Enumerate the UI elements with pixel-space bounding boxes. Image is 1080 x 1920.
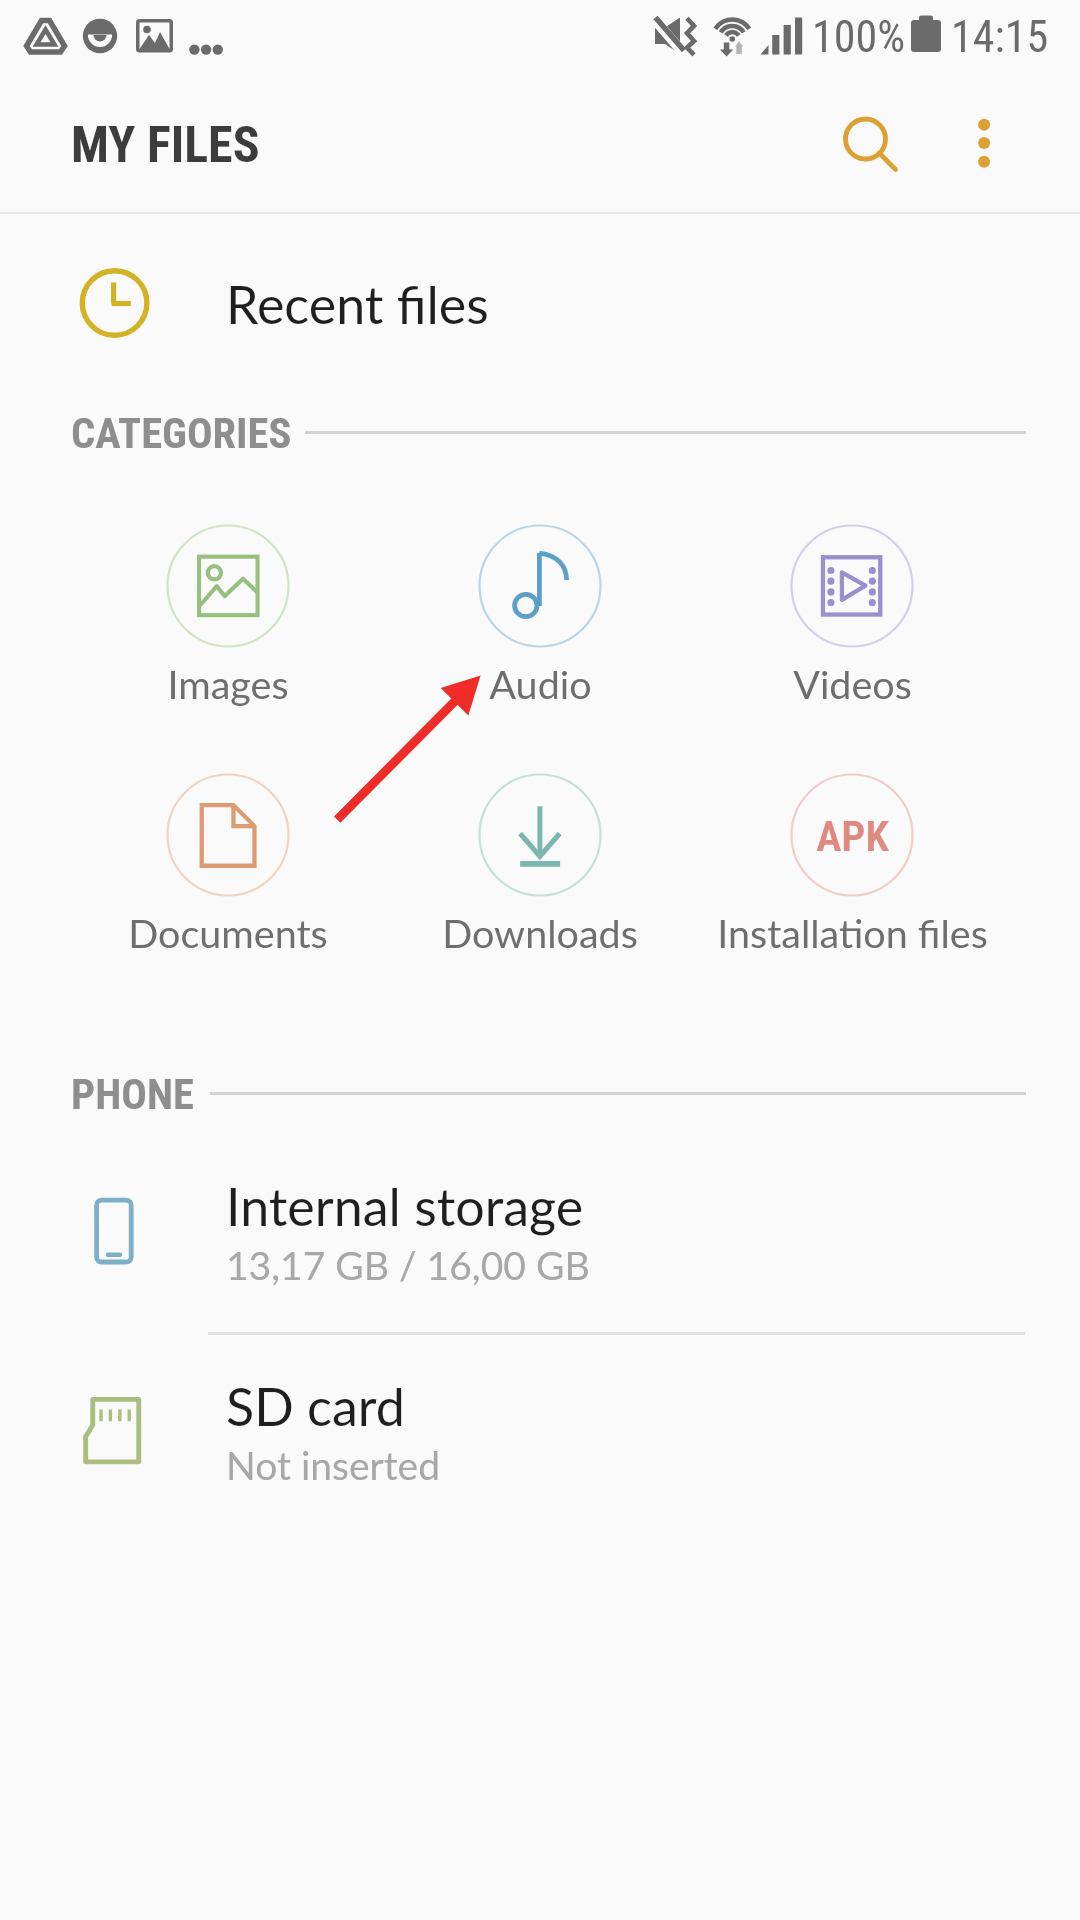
staticText: CATEGORIES [71,409,292,459]
staticText: Documents [128,909,328,956]
staticText: APK [816,812,889,862]
button[interactable]: Documents [72,773,384,963]
staticText: Videos [793,660,912,707]
staticText: Recent files [226,273,489,335]
staticText: 13,17 GB / 16,00 GB [226,1242,590,1289]
staticText: Audio [489,660,592,707]
staticText: Downloads [442,909,638,956]
staticText: Installation files [717,909,988,956]
button[interactable]: Images [72,524,384,714]
button[interactable]: Search [806,79,926,199]
button[interactable]: SD card [0,1334,1080,1529]
button[interactable]: Audio [384,524,696,714]
staticText: Not inserted [226,1442,441,1489]
staticText: SD card [226,1375,405,1437]
staticText: 14:15 [951,11,1049,63]
staticText: Internal storage [226,1175,584,1237]
staticText: PHONE [71,1070,194,1120]
button[interactable]: Recent files [0,214,1080,392]
staticText: MY FILES [71,116,260,175]
staticText: Images [167,660,289,707]
button[interactable]: Videos [696,524,1008,714]
button[interactable]: More options [934,93,1034,193]
button[interactable]: Downloads [384,773,696,963]
staticText: 100% [812,11,906,63]
button[interactable]: Internal storage [0,1137,1080,1332]
button[interactable]: Installation files [696,773,1008,963]
